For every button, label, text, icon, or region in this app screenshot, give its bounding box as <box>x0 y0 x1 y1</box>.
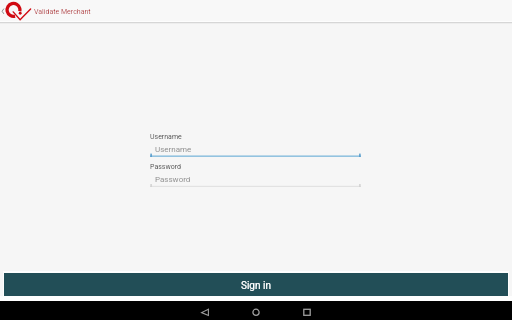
button[interactable]: Back <box>187 301 223 320</box>
staticText: Username <box>150 133 182 141</box>
button[interactable]: Sign in <box>4 273 508 296</box>
button[interactable]: Username <box>150 145 361 157</box>
staticText: Validate Merchant <box>34 8 91 16</box>
button[interactable]: Back <box>0 0 34 21</box>
button[interactable]: Password <box>150 175 361 187</box>
staticText: Password <box>155 175 191 184</box>
button[interactable]: Home <box>238 301 274 320</box>
staticText: Username <box>155 145 192 154</box>
staticText: Password <box>150 163 181 171</box>
button[interactable]: Recent apps <box>289 301 325 320</box>
staticText: Sign in <box>241 280 271 292</box>
